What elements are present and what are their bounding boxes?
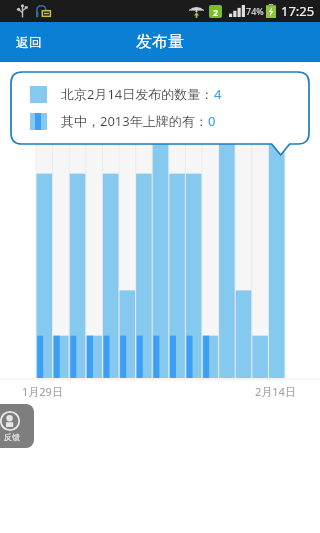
staticText: 1月29日 bbox=[22, 384, 63, 399]
staticText: 北京2月14日发布的数量： bbox=[61, 85, 214, 103]
button[interactable]: 反馈 bbox=[0, 404, 34, 448]
staticText: 17:25 bbox=[281, 2, 315, 20]
staticText: 其中，2013年上牌的有： bbox=[61, 112, 208, 130]
staticText: 2月14日 bbox=[255, 384, 296, 399]
staticText: 发布量 bbox=[136, 32, 184, 52]
staticText: 返回 bbox=[16, 34, 42, 50]
staticText: 反馈 bbox=[4, 432, 20, 442]
staticText: 0 bbox=[208, 112, 216, 130]
button[interactable]: 返回 bbox=[0, 25, 58, 59]
staticText: 74% bbox=[246, 5, 264, 17]
staticText: 2 bbox=[213, 6, 219, 18]
staticText: 4 bbox=[214, 85, 222, 103]
